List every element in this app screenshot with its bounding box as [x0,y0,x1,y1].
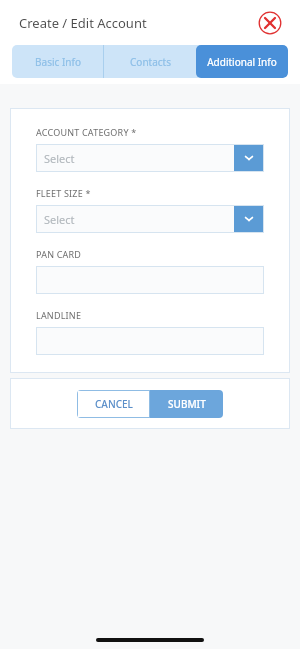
other: Open dropdown [234,205,264,233]
button[interactable]: Additional Info [196,45,288,78]
button[interactable]: Close [257,10,283,36]
staticText: CANCEL [95,397,133,411]
staticText: Select [44,151,75,166]
staticText: Contacts [130,55,171,69]
button[interactable]: Select [36,144,264,172]
staticText: ACCOUNT CATEGORY * [36,126,137,138]
button[interactable]: Contacts [104,45,196,78]
other: Open dropdown [234,144,264,172]
staticText: PAN CARD [36,248,82,260]
staticText: FLEET SIZE * [36,187,91,199]
button[interactable] [36,266,264,294]
button[interactable]: Basic Info [12,45,103,78]
staticText: SUBMIT [168,397,206,411]
button[interactable]: Select [36,205,264,233]
button[interactable]: CANCEL [77,390,150,418]
staticText: Create / Edit Account [19,14,147,32]
staticText: LANDLINE [36,309,82,321]
staticText: Basic Info [35,55,81,69]
button[interactable]: SUBMIT [150,390,223,418]
staticText: Select [44,212,75,227]
button[interactable] [36,327,264,355]
staticText: Additional Info [207,55,277,69]
